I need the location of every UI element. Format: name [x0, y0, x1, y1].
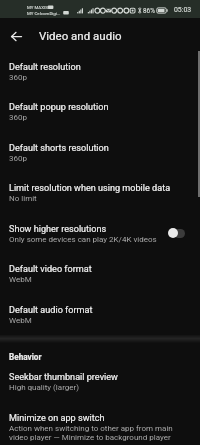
staticText: Seekbar thumbnail preview — [9, 372, 118, 383]
button[interactable]: Limit resolution when using mobile data — [0, 178, 200, 219]
staticText: Default video format — [9, 264, 92, 275]
staticText: Limit resolution when using mobile data — [9, 183, 171, 194]
button[interactable]: Back — [11, 31, 22, 42]
staticText: Default audio format — [9, 305, 93, 316]
button[interactable]: Default resolution — [0, 57, 200, 97]
staticText: Minimize on app switch — [9, 413, 105, 424]
button[interactable]: Default video format — [0, 259, 200, 300]
staticText: 360p — [9, 113, 27, 122]
staticText: 360p — [9, 73, 27, 82]
staticText: High quality (larger) — [9, 383, 80, 392]
button[interactable]: Default popup resolution — [0, 97, 200, 138]
button[interactable]: Default shorts resolution — [0, 138, 200, 178]
staticText: Behavior — [9, 352, 42, 362]
staticText: Only some devices can play 2K/4K videos — [9, 235, 157, 244]
staticText: WebM — [9, 316, 32, 325]
button[interactable]: Default audio format — [0, 300, 200, 335]
button[interactable]: Show higher resolutions — [0, 219, 200, 259]
staticText: Default shorts resolution — [9, 143, 109, 154]
staticText: Default resolution — [9, 62, 81, 73]
staticText: WebM — [9, 275, 32, 284]
staticText: Default popup resolution — [9, 102, 109, 113]
staticText: Action when switching to other app from … — [9, 424, 181, 442]
button[interactable]: Seekbar thumbnail preview — [0, 372, 200, 413]
staticText: Show higher resolutions — [9, 224, 107, 235]
staticText: No limit — [9, 194, 37, 203]
button[interactable]: Minimize on app switch — [0, 413, 200, 442]
staticText: Video and audio — [39, 29, 122, 42]
staticText: 05:03 — [174, 6, 192, 14]
staticText: 86% — [143, 7, 155, 15]
staticText: MY CelcomDigi... — [27, 11, 61, 16]
staticText: MY MAXIS — [27, 5, 48, 10]
staticText: 360p — [9, 154, 27, 163]
